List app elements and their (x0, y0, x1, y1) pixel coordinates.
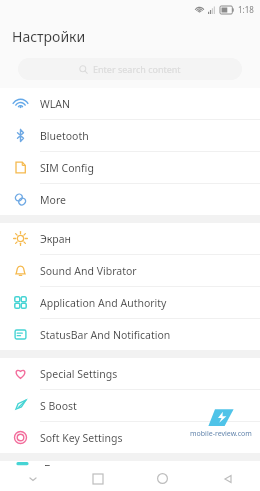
button[interactable]: S Boost (0, 390, 260, 421)
button[interactable]: SIM Config (0, 152, 260, 183)
staticText: mobile-review.com (190, 429, 252, 439)
staticText: WLAN (40, 97, 70, 111)
button[interactable]: Bluetooth (0, 120, 260, 151)
button[interactable]: Back (195, 466, 260, 491)
staticText: SIM Config (40, 161, 94, 175)
button[interactable]: StatusBar And Notification (0, 319, 260, 350)
button[interactable]: Sound And Vibrator (0, 255, 260, 286)
staticText: Soft Key Settings (40, 431, 123, 445)
staticText: Батарея (44, 461, 87, 466)
button[interactable]: Home (130, 466, 195, 491)
button[interactable]: WLAN (0, 88, 260, 119)
staticText: Special Settings (40, 367, 118, 381)
button[interactable]: More (0, 184, 260, 215)
button[interactable]: Hide navigation bar (0, 466, 65, 491)
button[interactable]: Soft Key Settings (0, 422, 260, 453)
button[interactable]: Экран (0, 223, 260, 254)
staticText: More (40, 193, 66, 207)
staticText: Настройки (12, 27, 86, 46)
staticText: Bluetooth (40, 129, 89, 143)
staticText: Sound And Vibrator (40, 264, 137, 278)
staticText: StatusBar And Notification (40, 328, 171, 342)
button[interactable]: Recent apps (65, 466, 130, 491)
staticText: Enter search content (93, 63, 181, 75)
button[interactable]: Application And Authority (0, 287, 260, 318)
button[interactable]: Special Settings (0, 358, 260, 389)
staticText: Application And Authority (40, 296, 167, 310)
button[interactable]: Enter search content (18, 58, 242, 80)
staticText: Экран (40, 232, 72, 246)
staticText: S Boost (40, 399, 77, 413)
staticText: 1:18 (238, 4, 254, 15)
